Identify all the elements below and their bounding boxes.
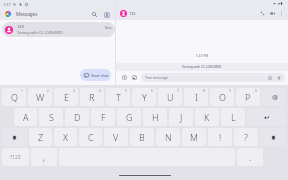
staticText: . bbox=[249, 151, 252, 163]
button[interactable]: E bbox=[54, 88, 78, 106]
staticText: Testing with CC-2345/MXD bbox=[17, 30, 63, 35]
staticText: 123 bbox=[17, 24, 24, 29]
staticText: M bbox=[190, 131, 198, 143]
button[interactable]: R bbox=[80, 88, 104, 106]
button[interactable]: C bbox=[79, 128, 102, 146]
staticText: R bbox=[89, 91, 95, 103]
button[interactable]: Backspace bbox=[262, 88, 286, 106]
staticText: 6 bbox=[151, 89, 153, 93]
button[interactable]: Testing with CC-2345/MXD bbox=[116, 63, 288, 71]
button[interactable]: T bbox=[106, 88, 130, 106]
button[interactable]: G bbox=[117, 108, 141, 126]
staticText: 1:37 bbox=[3, 2, 11, 7]
button[interactable]: ?123 bbox=[2, 148, 29, 166]
staticText: F bbox=[101, 111, 106, 123]
staticText: 0 bbox=[255, 89, 257, 93]
other: Shift bbox=[271, 135, 276, 140]
staticText: 7 bbox=[177, 89, 179, 93]
button[interactable]: P bbox=[236, 88, 260, 106]
staticText: 9 bbox=[229, 89, 231, 93]
staticText: U bbox=[167, 91, 174, 103]
staticText: Y bbox=[142, 91, 147, 103]
button[interactable]: S bbox=[39, 108, 63, 126]
button[interactable]: Account bbox=[101, 9, 112, 20]
button[interactable]: Shift bbox=[2, 128, 27, 146]
button[interactable]: More options bbox=[277, 9, 286, 18]
button[interactable]: Contact avatar bbox=[120, 10, 127, 17]
staticText: W bbox=[36, 91, 45, 103]
staticText: 5 bbox=[125, 89, 127, 93]
button[interactable]: Contact avatar bbox=[5, 26, 13, 34]
staticText: J bbox=[180, 111, 183, 123]
staticText: K bbox=[204, 111, 210, 123]
button[interactable]: Start chat bbox=[80, 69, 111, 81]
button[interactable]: A bbox=[14, 108, 37, 126]
button[interactable]: I bbox=[184, 88, 208, 106]
staticText: Text message bbox=[145, 75, 168, 80]
other: Backspace bbox=[272, 95, 277, 100]
button[interactable]: ! bbox=[208, 128, 232, 146]
button[interactable]: Send bbox=[276, 75, 282, 81]
staticText: O bbox=[219, 91, 226, 103]
staticText: 1 bbox=[21, 89, 23, 93]
staticText: Q bbox=[11, 91, 18, 103]
button[interactable]: Video call bbox=[267, 8, 277, 18]
staticText: 2 bbox=[47, 89, 49, 93]
staticText: ? bbox=[244, 131, 248, 143]
button[interactable]: Shift bbox=[260, 128, 286, 146]
button[interactable]: Gallery bbox=[130, 73, 139, 82]
staticText: Messages bbox=[16, 11, 38, 17]
staticText: ?123 bbox=[10, 154, 21, 161]
button[interactable]: Enter bbox=[247, 108, 286, 126]
other: Enter bbox=[264, 115, 269, 120]
button[interactable]: Text message bbox=[141, 73, 285, 82]
button[interactable]: L bbox=[221, 108, 245, 126]
staticText: I bbox=[195, 91, 198, 103]
button[interactable]: W bbox=[28, 88, 52, 106]
staticText: 123 bbox=[129, 11, 136, 16]
button[interactable]: Z bbox=[29, 128, 52, 146]
button[interactable]: D bbox=[65, 108, 89, 126]
staticText: 8 bbox=[203, 89, 205, 93]
button[interactable]: X bbox=[54, 128, 77, 146]
staticText: A bbox=[23, 111, 29, 123]
staticText: V bbox=[113, 131, 119, 143]
staticText: , bbox=[43, 151, 46, 163]
button[interactable]: F bbox=[91, 108, 115, 126]
button[interactable]: O bbox=[210, 88, 234, 106]
staticText: Testing with CC-2345/MXD bbox=[182, 65, 222, 69]
button[interactable]: U bbox=[158, 88, 182, 106]
button[interactable]: , bbox=[31, 148, 57, 166]
button[interactable]: B bbox=[130, 128, 154, 146]
staticText: T bbox=[116, 91, 121, 103]
staticText: G bbox=[126, 111, 133, 123]
button[interactable]: Contact avatar bbox=[2, 22, 115, 37]
button[interactable]: Emoji bbox=[267, 75, 273, 81]
button[interactable]: Call bbox=[257, 8, 267, 18]
button[interactable]: H bbox=[143, 108, 167, 126]
button[interactable]: Add attachment bbox=[120, 73, 129, 82]
staticText: X bbox=[63, 131, 68, 143]
staticText: 3 bbox=[73, 89, 75, 93]
staticText: E bbox=[64, 91, 69, 103]
button[interactable]: N bbox=[156, 128, 180, 146]
button[interactable]: V bbox=[104, 128, 128, 146]
button[interactable]: M bbox=[182, 128, 206, 146]
staticText: 4 bbox=[99, 89, 101, 93]
button[interactable]: K bbox=[195, 108, 219, 126]
button[interactable]: ? bbox=[234, 128, 258, 146]
other: Shift bbox=[12, 135, 17, 140]
staticText: B bbox=[139, 131, 145, 143]
staticText: ! bbox=[219, 131, 222, 143]
button[interactable]: Y bbox=[132, 88, 156, 106]
button[interactable]: Q bbox=[2, 88, 26, 106]
staticText: Now bbox=[105, 26, 112, 30]
staticText: C bbox=[88, 131, 94, 143]
button[interactable]: J bbox=[169, 108, 193, 126]
staticText: P bbox=[245, 91, 251, 103]
staticText: N bbox=[165, 131, 172, 143]
staticText: Z bbox=[38, 131, 44, 143]
button[interactable]: Search bbox=[89, 9, 100, 20]
